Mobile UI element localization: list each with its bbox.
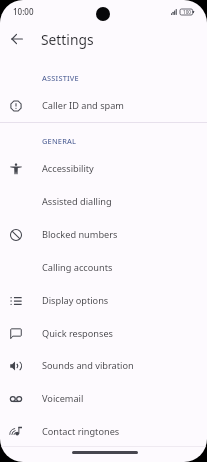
staticText: GENERAL	[42, 136, 77, 146]
button[interactable]: Sounds and vibration	[0, 349, 207, 382]
button[interactable]: Display options	[0, 284, 207, 317]
button[interactable]: Assisted dialling	[0, 185, 207, 218]
button[interactable]: Voicemail	[0, 382, 207, 415]
button[interactable]: Contact ringtones	[0, 415, 207, 448]
button[interactable]: Blocked numbers	[0, 218, 207, 251]
staticText: Settings	[41, 30, 94, 49]
button[interactable]: Back	[3, 25, 31, 53]
button[interactable]: Caller ID and spam	[0, 89, 207, 122]
button[interactable]: Quick responses	[0, 317, 207, 350]
staticText: 10:00	[13, 6, 34, 17]
staticText: ASSISTIVE	[42, 73, 79, 83]
staticText: Blocked numbers	[42, 228, 118, 241]
staticText: Contact ringtones	[42, 425, 120, 438]
staticText: Caller ID and spam	[42, 99, 124, 112]
button[interactable]: Accessibility	[0, 152, 207, 185]
staticText: Sounds and vibration	[42, 359, 134, 372]
staticText: Calling accounts	[42, 261, 113, 274]
staticText: Accessibility	[42, 162, 94, 175]
staticText: 100	[183, 9, 191, 15]
button[interactable]: Calling accounts	[0, 251, 207, 284]
staticText: Display options	[42, 294, 109, 307]
staticText: Assisted dialling	[42, 195, 112, 208]
staticText: Voicemail	[42, 392, 84, 405]
staticText: Quick responses	[42, 327, 113, 340]
